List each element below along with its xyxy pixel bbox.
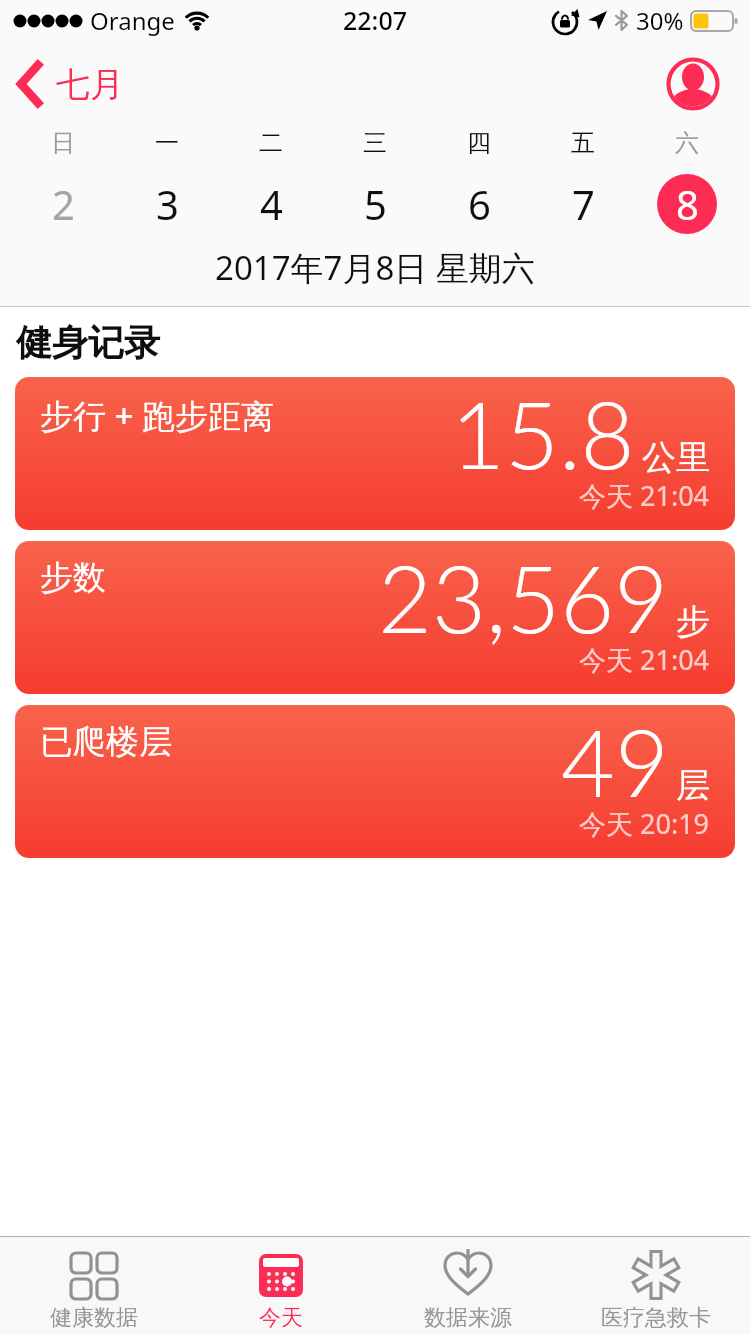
staticText: 四 xyxy=(467,128,491,158)
staticText: 三 xyxy=(363,128,387,158)
button[interactable]: 5 xyxy=(345,174,405,234)
staticText: 健康数据 xyxy=(50,1304,138,1332)
staticText: 日 xyxy=(51,128,75,158)
button[interactable]: 步行 + 跑步距离 xyxy=(15,377,735,530)
staticText: 层 xyxy=(676,764,710,807)
button[interactable]: 数据来源 xyxy=(374,1237,562,1334)
button[interactable]: 已爬楼层 xyxy=(15,705,735,858)
staticText: 七月 xyxy=(56,63,124,106)
staticText: 步数 xyxy=(40,557,106,599)
button[interactable]: 医疗急救卡 xyxy=(562,1237,750,1334)
button[interactable] xyxy=(666,57,720,111)
staticText: 今天 21:04 xyxy=(579,477,710,514)
staticText: 2 xyxy=(52,177,75,231)
staticText: 4 xyxy=(260,177,283,231)
button[interactable]: 4 xyxy=(241,174,301,234)
staticText: 5 xyxy=(364,177,387,231)
button[interactable]: 今天 xyxy=(187,1237,374,1334)
staticText: 步 xyxy=(676,600,710,643)
staticText: 一 xyxy=(155,128,179,158)
staticText: Orange xyxy=(90,4,175,37)
button[interactable]: 7 xyxy=(553,174,613,234)
staticText: 今天 xyxy=(259,1304,303,1332)
button[interactable]: 8 xyxy=(657,174,717,234)
staticText: 7 xyxy=(572,177,595,231)
staticText: 今天 20:19 xyxy=(579,805,710,842)
staticText: 23,569 xyxy=(378,541,669,653)
staticText: 六 xyxy=(675,128,699,158)
staticText: 数据来源 xyxy=(424,1304,512,1332)
staticText: 健身记录 xyxy=(16,320,160,365)
button[interactable]: 健康数据 xyxy=(0,1237,187,1334)
staticText: 已爬楼层 xyxy=(40,721,172,763)
staticText: 22:07 xyxy=(343,3,408,37)
staticText: 49 xyxy=(561,705,669,817)
button[interactable]: 2 xyxy=(33,174,93,234)
button[interactable]: 步数 xyxy=(15,541,735,694)
staticText: 医疗急救卡 xyxy=(601,1304,711,1332)
staticText: 公里 xyxy=(642,436,710,479)
staticText: 8 xyxy=(676,177,699,231)
button[interactable]: 七月 xyxy=(16,60,124,108)
staticText: 今天 21:04 xyxy=(579,641,710,678)
staticText: 步行 + 跑步距离 xyxy=(40,393,275,438)
staticText: 2017年7月8日 星期六 xyxy=(215,245,535,290)
staticText: 二 xyxy=(259,128,283,158)
staticText: 30% xyxy=(636,4,684,37)
button[interactable]: 6 xyxy=(449,174,509,234)
staticText: 3 xyxy=(156,177,179,231)
button[interactable]: 3 xyxy=(137,174,197,234)
staticText: 五 xyxy=(571,128,595,158)
staticText: 6 xyxy=(468,177,491,231)
staticText: 15.8 xyxy=(451,377,635,489)
